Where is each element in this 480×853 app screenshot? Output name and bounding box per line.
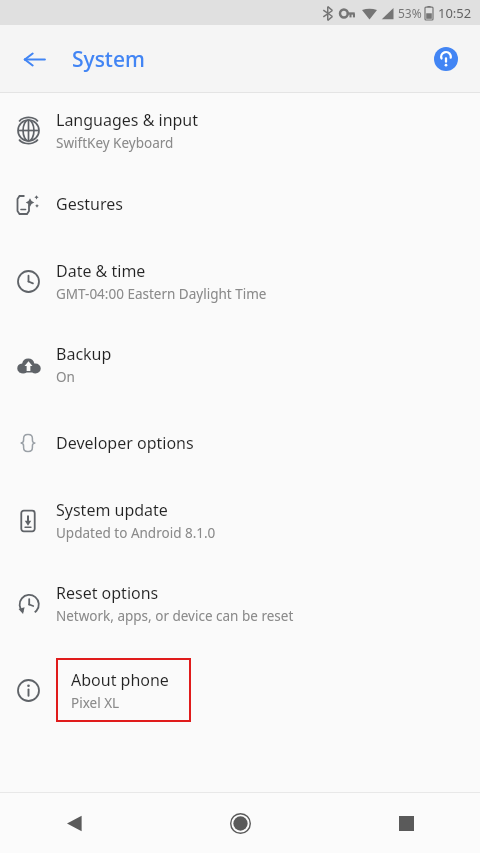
button[interactable]: Back	[50, 799, 98, 847]
staticText: Network, apps, or device can be reset	[56, 607, 294, 625]
button[interactable]: Recent apps	[382, 799, 430, 847]
button[interactable]: Reset options	[0, 562, 480, 645]
staticText: System	[72, 45, 145, 74]
staticText: Languages & input	[56, 109, 199, 131]
button[interactable]: Date & time	[0, 240, 480, 323]
button[interactable]: Backup	[0, 323, 480, 406]
button[interactable]: Back	[12, 37, 56, 81]
staticText: Gestures	[56, 193, 123, 215]
button[interactable]: About phone	[0, 645, 480, 735]
button[interactable]: Gestures	[0, 168, 480, 240]
staticText: About phone	[71, 669, 169, 691]
staticText: 53%	[398, 5, 422, 21]
button[interactable]: System update	[0, 479, 480, 562]
staticText: Pixel XL	[71, 694, 120, 712]
staticText: 10:52	[438, 4, 472, 22]
staticText: On	[56, 368, 75, 386]
staticText: SwiftKey Keyboard	[56, 134, 174, 152]
staticText: Developer options	[56, 432, 194, 454]
button[interactable]: Home	[216, 799, 264, 847]
staticText: GMT-04:00 Eastern Daylight Time	[56, 285, 267, 303]
staticText: Backup	[56, 343, 112, 365]
staticText: Reset options	[56, 582, 159, 604]
button[interactable]: Developer options	[0, 406, 480, 479]
staticText: Updated to Android 8.1.0	[56, 524, 216, 542]
button[interactable]: Help	[424, 37, 468, 81]
button[interactable]: Languages & input	[0, 93, 480, 168]
staticText: System update	[56, 499, 168, 521]
staticText: Date & time	[56, 260, 146, 282]
